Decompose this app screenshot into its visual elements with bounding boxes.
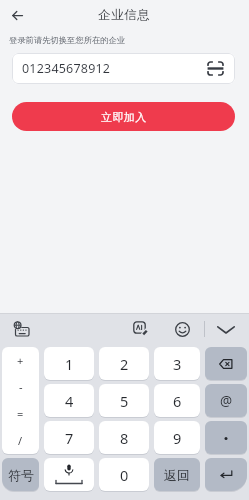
staticText: = [17,406,24,421]
staticText: 5 [120,391,129,411]
staticText: - [19,379,23,394]
staticText: 4 [65,391,74,411]
staticText: @ [220,392,233,410]
staticText: / [18,433,23,448]
staticText: 9 [173,428,182,448]
staticText: 企业信息 [98,7,151,23]
staticText: 2 [120,354,129,374]
staticText: 返回 [164,467,190,483]
staticText: 3 [173,354,182,374]
staticText: 012345678912 [22,60,111,77]
staticText: 登录前请先切换至您所在的企业 [9,35,126,45]
staticText: 8 [120,428,129,448]
staticText: 1 [65,354,74,374]
staticText: 立即加入 [101,110,147,124]
staticText: 7 [65,428,74,448]
staticText: 符号 [8,467,34,483]
staticText: + [17,353,24,368]
staticText: 6 [173,391,182,411]
staticText: 0 [120,465,129,485]
